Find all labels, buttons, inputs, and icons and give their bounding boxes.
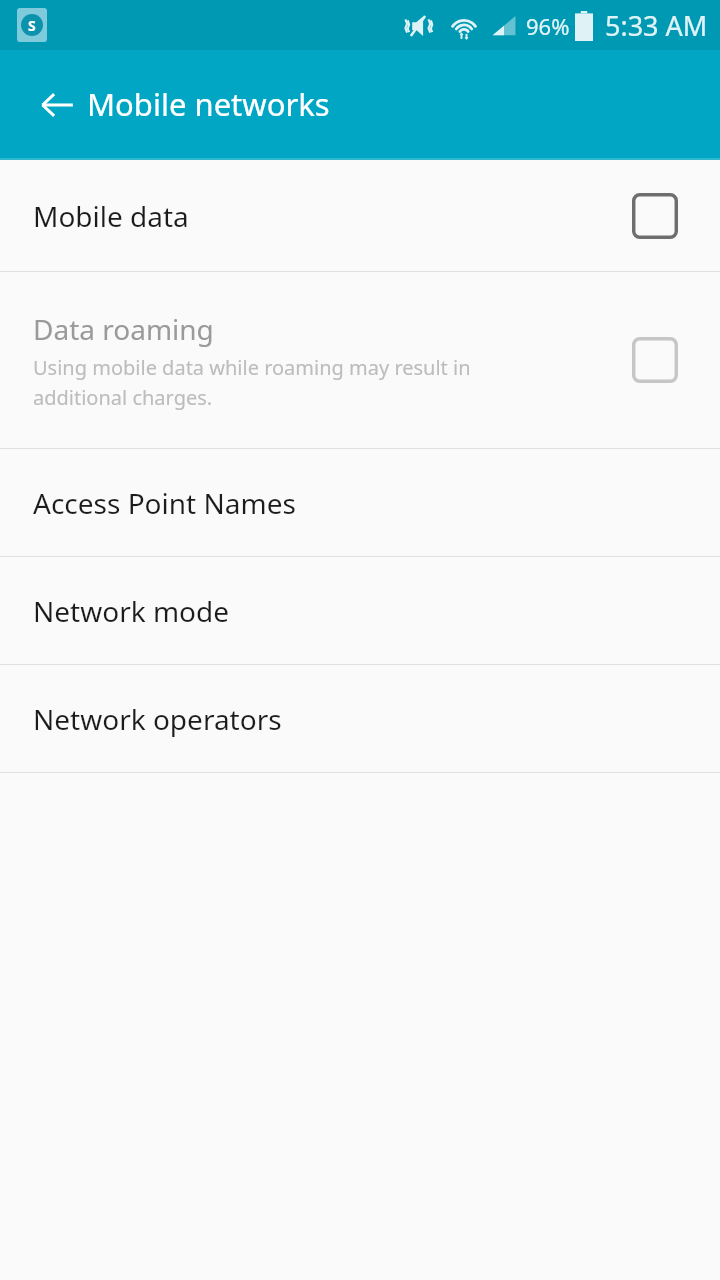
button[interactable]: Data roaming <box>0 272 720 448</box>
staticText: Network mode <box>33 592 230 630</box>
staticText: Access Point Names <box>33 484 296 522</box>
staticText: Data roaming <box>33 310 214 348</box>
staticText: Mobile data <box>33 197 189 235</box>
button[interactable]: Mobile data <box>0 160 720 271</box>
staticText: S <box>28 16 36 35</box>
staticText: 5:33 AM <box>605 7 708 44</box>
button[interactable]: Network operators <box>0 665 720 772</box>
button[interactable]: Network mode <box>0 557 720 664</box>
button[interactable]: Access Point Names <box>0 449 720 556</box>
staticText: 96% <box>526 11 570 41</box>
button[interactable]: Back <box>28 76 86 134</box>
staticText: Mobile networks <box>87 83 330 125</box>
staticText: Using mobile data while roaming may resu… <box>33 354 471 411</box>
staticText: Network operators <box>33 700 282 738</box>
